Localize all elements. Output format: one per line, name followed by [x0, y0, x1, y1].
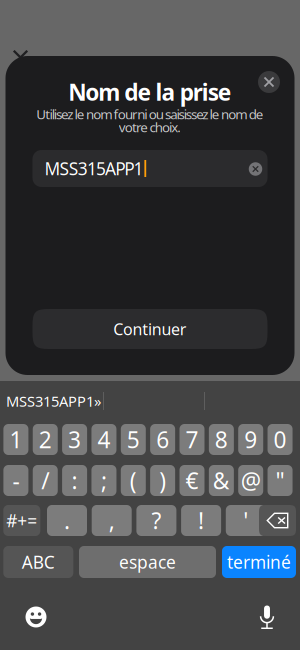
staticText: 2 — [39, 424, 52, 454]
button[interactable]: & — [209, 465, 234, 496]
button[interactable]: 5 — [121, 424, 146, 455]
button[interactable]: ; — [91, 465, 116, 496]
button[interactable]: espace — [79, 546, 216, 578]
button[interactable]: ! — [181, 505, 221, 536]
button[interactable]: 3 — [62, 424, 87, 455]
staticText: #+= — [6, 509, 37, 532]
button[interactable]: Supprimer — [259, 505, 296, 536]
button[interactable]: 1 — [3, 424, 28, 455]
staticText: Continuer — [113, 318, 187, 340]
staticText: ; — [101, 465, 107, 495]
button[interactable]: Emoji — [15, 596, 57, 638]
button[interactable]: Continuer — [32, 309, 267, 349]
button[interactable]: / — [33, 465, 58, 496]
staticText: 6 — [156, 424, 169, 454]
staticText: Nom de la prise — [68, 77, 232, 107]
button[interactable]: , — [92, 505, 132, 536]
button[interactable]: 6 — [150, 424, 175, 455]
button[interactable]: " — [268, 465, 293, 496]
staticText: 0 — [274, 424, 287, 454]
button[interactable]: € — [179, 465, 204, 496]
staticText: espace — [119, 550, 176, 573]
button[interactable]: Effacer le texte — [242, 156, 268, 182]
button[interactable]: . — [47, 505, 87, 536]
button[interactable]: Dictée — [246, 596, 288, 638]
button[interactable]: - — [3, 465, 28, 496]
staticText: 3 — [68, 424, 81, 454]
staticText: & — [213, 465, 230, 495]
staticText: " — [276, 465, 285, 495]
staticText: , — [109, 505, 115, 535]
button[interactable]: MSS315APP1» — [3, 383, 104, 419]
staticText: votre choix. — [119, 118, 181, 136]
staticText: ? — [151, 505, 161, 535]
staticText: . — [64, 505, 70, 535]
button[interactable]: ) — [150, 465, 175, 496]
button[interactable]: Fermer — [6, 43, 34, 71]
staticText: @ — [241, 465, 261, 495]
button[interactable]: 2 — [33, 424, 58, 455]
staticText: 5 — [127, 424, 140, 454]
staticText: MSS315APP1 — [44, 157, 143, 180]
button[interactable]: ? — [136, 505, 176, 536]
staticText: 7 — [185, 424, 198, 454]
button[interactable]: 0 — [268, 424, 293, 455]
button[interactable]: 9 — [238, 424, 263, 455]
button[interactable]: 4 — [91, 424, 116, 455]
staticText: € — [185, 465, 198, 495]
button[interactable]: Fermer — [252, 65, 286, 99]
staticText: 1 — [9, 424, 22, 454]
button[interactable]: ABC — [3, 546, 73, 578]
staticText: 9 — [244, 424, 257, 454]
staticText: ' — [243, 505, 248, 535]
button[interactable]: terminé — [222, 546, 296, 578]
button[interactable]: #+= — [3, 505, 40, 536]
staticText: terminé — [227, 550, 291, 573]
button[interactable]: 8 — [209, 424, 234, 455]
staticText: Utilisez le nom fourni ou saisissez le n… — [36, 105, 264, 123]
button[interactable]: : — [62, 465, 87, 496]
button[interactable]: ( — [121, 465, 146, 496]
staticText: ! — [198, 505, 204, 535]
staticText: ) — [159, 465, 166, 495]
staticText: : — [72, 465, 78, 495]
staticText: / — [41, 465, 49, 495]
staticText: ABC — [22, 550, 55, 573]
staticText: 4 — [97, 424, 110, 454]
staticText: ( — [130, 465, 137, 495]
staticText: 8 — [215, 424, 228, 454]
button[interactable]: 7 — [179, 424, 204, 455]
staticText: MSS315APP1» — [6, 391, 101, 411]
staticText: - — [12, 465, 19, 495]
button[interactable]: ' — [226, 505, 266, 536]
button[interactable]: @ — [238, 465, 263, 496]
